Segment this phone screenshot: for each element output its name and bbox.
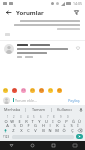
button[interactable]: Like [74, 44, 81, 51]
button[interactable]: Ö [61, 127, 67, 133]
button[interactable]: Y [36, 119, 42, 123]
staticText: 1 [7, 115, 9, 119]
staticText: 0 [67, 115, 69, 119]
button[interactable]: C [25, 127, 31, 133]
staticText: Ş [70, 123, 73, 127]
button[interactable]: Emoji 5 [39, 88, 44, 93]
staticText: D [20, 123, 23, 127]
staticText: T [31, 119, 34, 123]
staticText: I [52, 119, 54, 123]
staticText: 9 [60, 115, 62, 119]
staticText: Merhaba [4, 107, 21, 112]
button[interactable]: T [29, 119, 35, 123]
button[interactable]: Keyboard [64, 141, 85, 150]
button[interactable]: Recents [43, 141, 64, 150]
button[interactable]: V [32, 127, 38, 133]
staticText: 2 [13, 115, 15, 119]
button[interactable]: Yorum ekle… [15, 98, 66, 103]
button[interactable]: Back [4, 8, 13, 17]
staticText: Paylaş [68, 98, 80, 103]
button[interactable]: X [18, 127, 24, 133]
staticText: U [45, 119, 48, 123]
staticText: 5 [33, 115, 35, 119]
button[interactable]: P [63, 119, 69, 123]
staticText: Yorumlar [16, 9, 44, 17]
button[interactable]: J [47, 123, 53, 127]
button[interactable]: Backspace [76, 127, 84, 133]
staticText: Q [4, 119, 8, 123]
staticText: B [42, 128, 45, 133]
button[interactable]: K [54, 123, 60, 127]
staticText: P [65, 119, 68, 123]
staticText: S [13, 123, 16, 127]
staticText: Ğ [72, 119, 75, 123]
button[interactable]: Kullanıcı [52, 105, 77, 114]
staticText: V [34, 128, 37, 133]
button[interactable]: Ç [69, 127, 75, 133]
button[interactable]: R [23, 119, 29, 123]
button[interactable]: Emoji 3 [21, 88, 26, 93]
staticText: W [10, 119, 14, 123]
staticText: O [57, 119, 61, 123]
staticText: 6 [40, 115, 42, 119]
staticText: N [48, 128, 52, 133]
button[interactable]: D [18, 123, 24, 127]
button[interactable]: Tamam [26, 105, 51, 114]
staticText: Ü [78, 119, 81, 123]
button[interactable]: ?123 [2, 134, 11, 139]
button[interactable]: B [40, 127, 46, 133]
staticText: R [25, 119, 28, 123]
button[interactable]: L [61, 123, 67, 127]
staticText: F [27, 123, 30, 127]
button[interactable]: Home [22, 141, 43, 150]
button[interactable]: E [16, 119, 22, 123]
button[interactable]: Merhaba [0, 105, 25, 114]
button[interactable]: Emoji 7 [57, 88, 62, 93]
staticText: M [55, 128, 59, 133]
button[interactable]: N [47, 127, 53, 133]
button[interactable]: Ğ [70, 119, 76, 123]
button[interactable]: Voice input [77, 105, 85, 114]
staticText: 7 [47, 115, 49, 119]
staticText: İ [77, 123, 79, 127]
button[interactable]: Ş [68, 123, 74, 127]
staticText: 14:05 [73, 1, 82, 6]
button[interactable]: Back [0, 141, 22, 150]
staticText: 8 [53, 115, 55, 119]
button[interactable]: İ [75, 123, 81, 127]
staticText: L [63, 123, 66, 127]
button[interactable]: Shift [1, 127, 9, 133]
button[interactable]: S [11, 123, 17, 127]
button[interactable]: Emoji 4 [30, 88, 35, 93]
staticText: C [27, 128, 30, 133]
button[interactable]: Send [76, 134, 83, 139]
staticText: G [34, 123, 37, 127]
button[interactable]: O [56, 119, 62, 123]
button[interactable]: G [32, 123, 38, 127]
button[interactable]: Emoji 6 [48, 88, 53, 93]
button[interactable]: I [50, 119, 56, 123]
button[interactable]: W [9, 119, 15, 123]
button[interactable]: Emoji 1 [3, 88, 8, 93]
button[interactable]: A [4, 123, 10, 127]
button[interactable]: M [54, 127, 60, 133]
button[interactable]: Z [10, 127, 16, 133]
button[interactable]: Emoji 2 [12, 88, 17, 93]
staticText: 3 [20, 115, 22, 119]
staticText: X [20, 128, 23, 133]
button[interactable]: F [25, 123, 31, 127]
button[interactable]: Like [0, 41, 85, 61]
button[interactable]: H [40, 123, 46, 127]
staticText: Z [12, 128, 15, 133]
staticText: K [56, 123, 59, 127]
button[interactable]: Q [3, 119, 9, 123]
button[interactable]: Paylaş [66, 97, 82, 104]
staticText: H [42, 123, 45, 127]
staticText: ?123 [3, 135, 10, 139]
staticText: Yorum ekle… [15, 98, 37, 103]
staticText: Y [38, 119, 41, 123]
button[interactable]: Ü [76, 119, 82, 123]
button[interactable]: Filter [72, 8, 81, 17]
button[interactable]: U [43, 119, 49, 123]
